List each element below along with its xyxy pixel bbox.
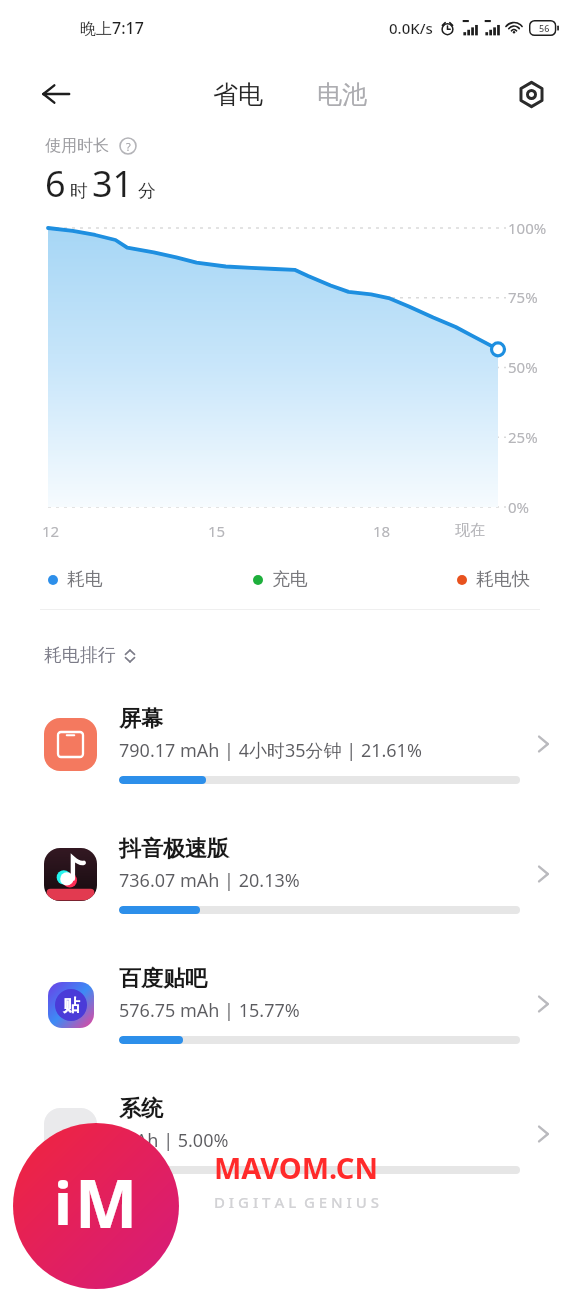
staticText: 75% xyxy=(508,287,538,307)
staticText: MAVOM.CN xyxy=(214,1148,378,1187)
button[interactable]: 耗电快 xyxy=(453,564,534,595)
button[interactable]: 充电 xyxy=(249,564,312,595)
staticText: 0% xyxy=(508,497,530,517)
staticText: 100% xyxy=(508,218,547,238)
staticText: mAh | 5.00% xyxy=(119,1128,229,1153)
staticText: 屏幕 xyxy=(119,705,163,733)
staticText: 56 xyxy=(539,22,550,34)
button[interactable]: Back xyxy=(32,70,80,118)
staticText: 分 xyxy=(138,180,156,203)
button[interactable]: 系统 xyxy=(0,1069,580,1199)
staticText: 15 xyxy=(208,521,226,541)
staticText: 50% xyxy=(508,357,538,377)
button[interactable]: 耗电排行 xyxy=(42,640,139,671)
button[interactable]: Settings xyxy=(508,71,554,117)
staticText: 12 xyxy=(42,521,60,541)
staticText: 6 xyxy=(45,159,66,208)
staticText: 耗电排行 xyxy=(44,644,116,667)
staticText: 贴 xyxy=(63,995,80,1016)
other: Details xyxy=(532,993,554,1015)
staticText: D I G I T A L G E N I U S xyxy=(214,1192,379,1212)
button[interactable]: 抖音极速版 xyxy=(0,809,580,939)
staticText: 31 xyxy=(92,159,134,208)
staticText: i xyxy=(54,1161,72,1243)
other: Details xyxy=(532,1123,554,1145)
staticText: M xyxy=(75,1157,138,1247)
staticText: 使用时长 xyxy=(45,136,109,156)
staticText: ? xyxy=(126,139,131,154)
staticText: 百度贴吧 xyxy=(119,965,207,993)
staticText: 耗电快 xyxy=(476,568,530,591)
button[interactable]: 屏幕 xyxy=(0,679,580,809)
staticText: 抖音极速版 xyxy=(119,835,229,863)
button[interactable]: Help xyxy=(117,135,139,157)
staticText: 736.07 mAh | 20.13% xyxy=(119,868,300,893)
staticText: 时 xyxy=(70,180,88,203)
staticText: 电池 xyxy=(317,79,367,110)
staticText: 0.0K/s xyxy=(389,18,433,38)
button[interactable]: 电池 xyxy=(309,73,375,116)
staticText: 25% xyxy=(508,427,538,447)
other: Details xyxy=(532,733,554,755)
button[interactable]: 耗电 xyxy=(44,564,107,595)
staticText: 790.17 mAh | 4小时35分钟 | 21.61% xyxy=(119,738,422,763)
other: Details xyxy=(532,863,554,885)
staticText: 晚上7:17 xyxy=(80,17,144,39)
button[interactable]: 省电 xyxy=(205,73,271,116)
staticText: 系统 xyxy=(119,1095,163,1123)
staticText: 省电 xyxy=(213,79,263,110)
button[interactable]: 贴 xyxy=(0,939,580,1069)
staticText: 18 xyxy=(373,521,391,541)
staticText: 现在 xyxy=(455,521,485,540)
staticText: 576.75 mAh | 15.77% xyxy=(119,998,300,1023)
staticText: 充电 xyxy=(272,568,308,591)
staticText: 耗电 xyxy=(67,568,103,591)
